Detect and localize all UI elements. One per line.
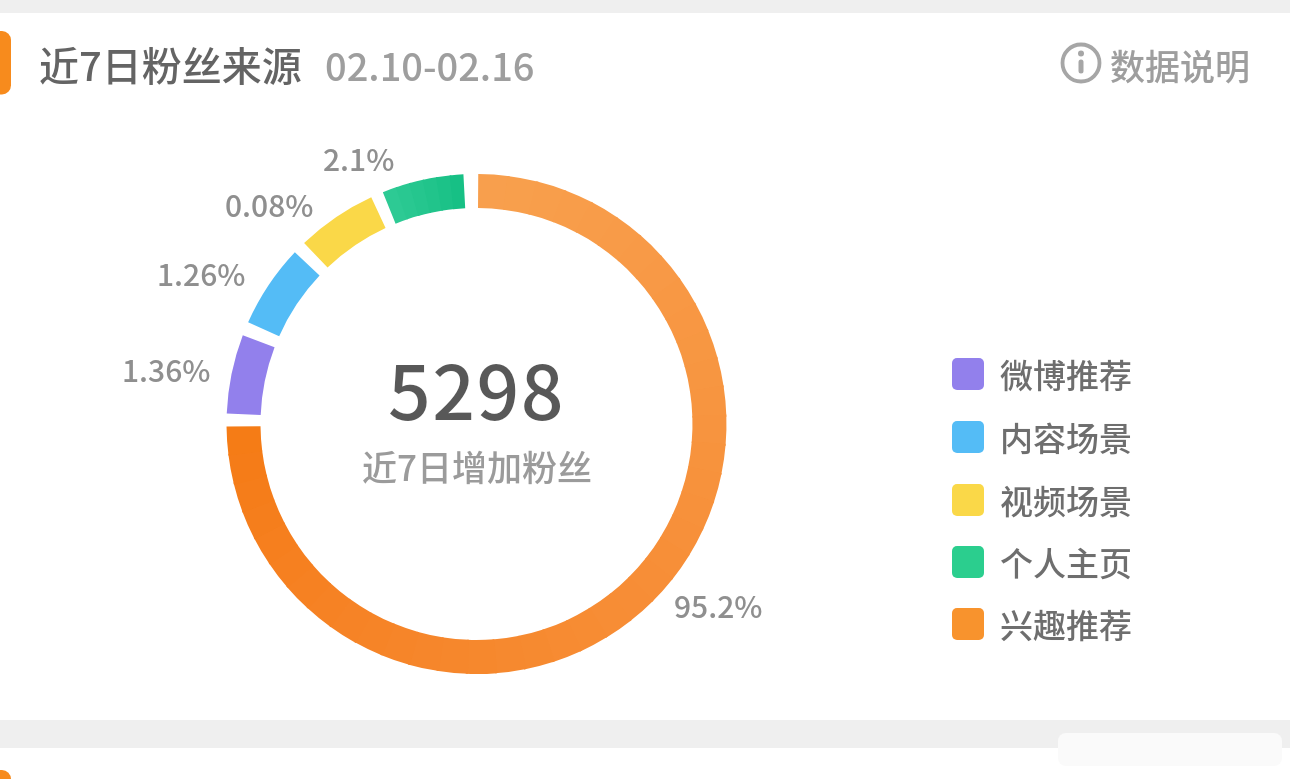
- staticText: 1.26%: [157, 251, 246, 294]
- staticText: 内容场景: [1000, 413, 1132, 461]
- staticText: 2.1%: [323, 136, 395, 179]
- button[interactable]: 微博推荐: [946, 348, 1266, 400]
- staticText: 个人主页: [1000, 538, 1132, 586]
- staticText: 兴趣推荐: [1000, 600, 1132, 648]
- button[interactable]: 内容场景: [946, 411, 1266, 463]
- staticText: 近7日粉丝来源: [39, 35, 302, 93]
- staticText: 0.08%: [225, 182, 314, 225]
- staticText: 数据说明: [1110, 39, 1251, 90]
- button[interactable]: 视频场景: [946, 474, 1266, 526]
- staticText: 5298: [388, 333, 566, 442]
- staticText: 近7日增加粉丝: [362, 440, 592, 491]
- staticText: 02.10-02.16: [325, 37, 535, 92]
- button[interactable]: 兴趣推荐: [946, 598, 1266, 650]
- staticText: 视频场景: [1000, 476, 1132, 524]
- button[interactable]: 数据说明: [1052, 34, 1264, 94]
- button[interactable]: 个人主页: [946, 536, 1266, 588]
- staticText: 微博推荐: [1000, 350, 1132, 398]
- staticText: 95.2%: [674, 583, 763, 626]
- staticText: 1.36%: [122, 347, 211, 390]
